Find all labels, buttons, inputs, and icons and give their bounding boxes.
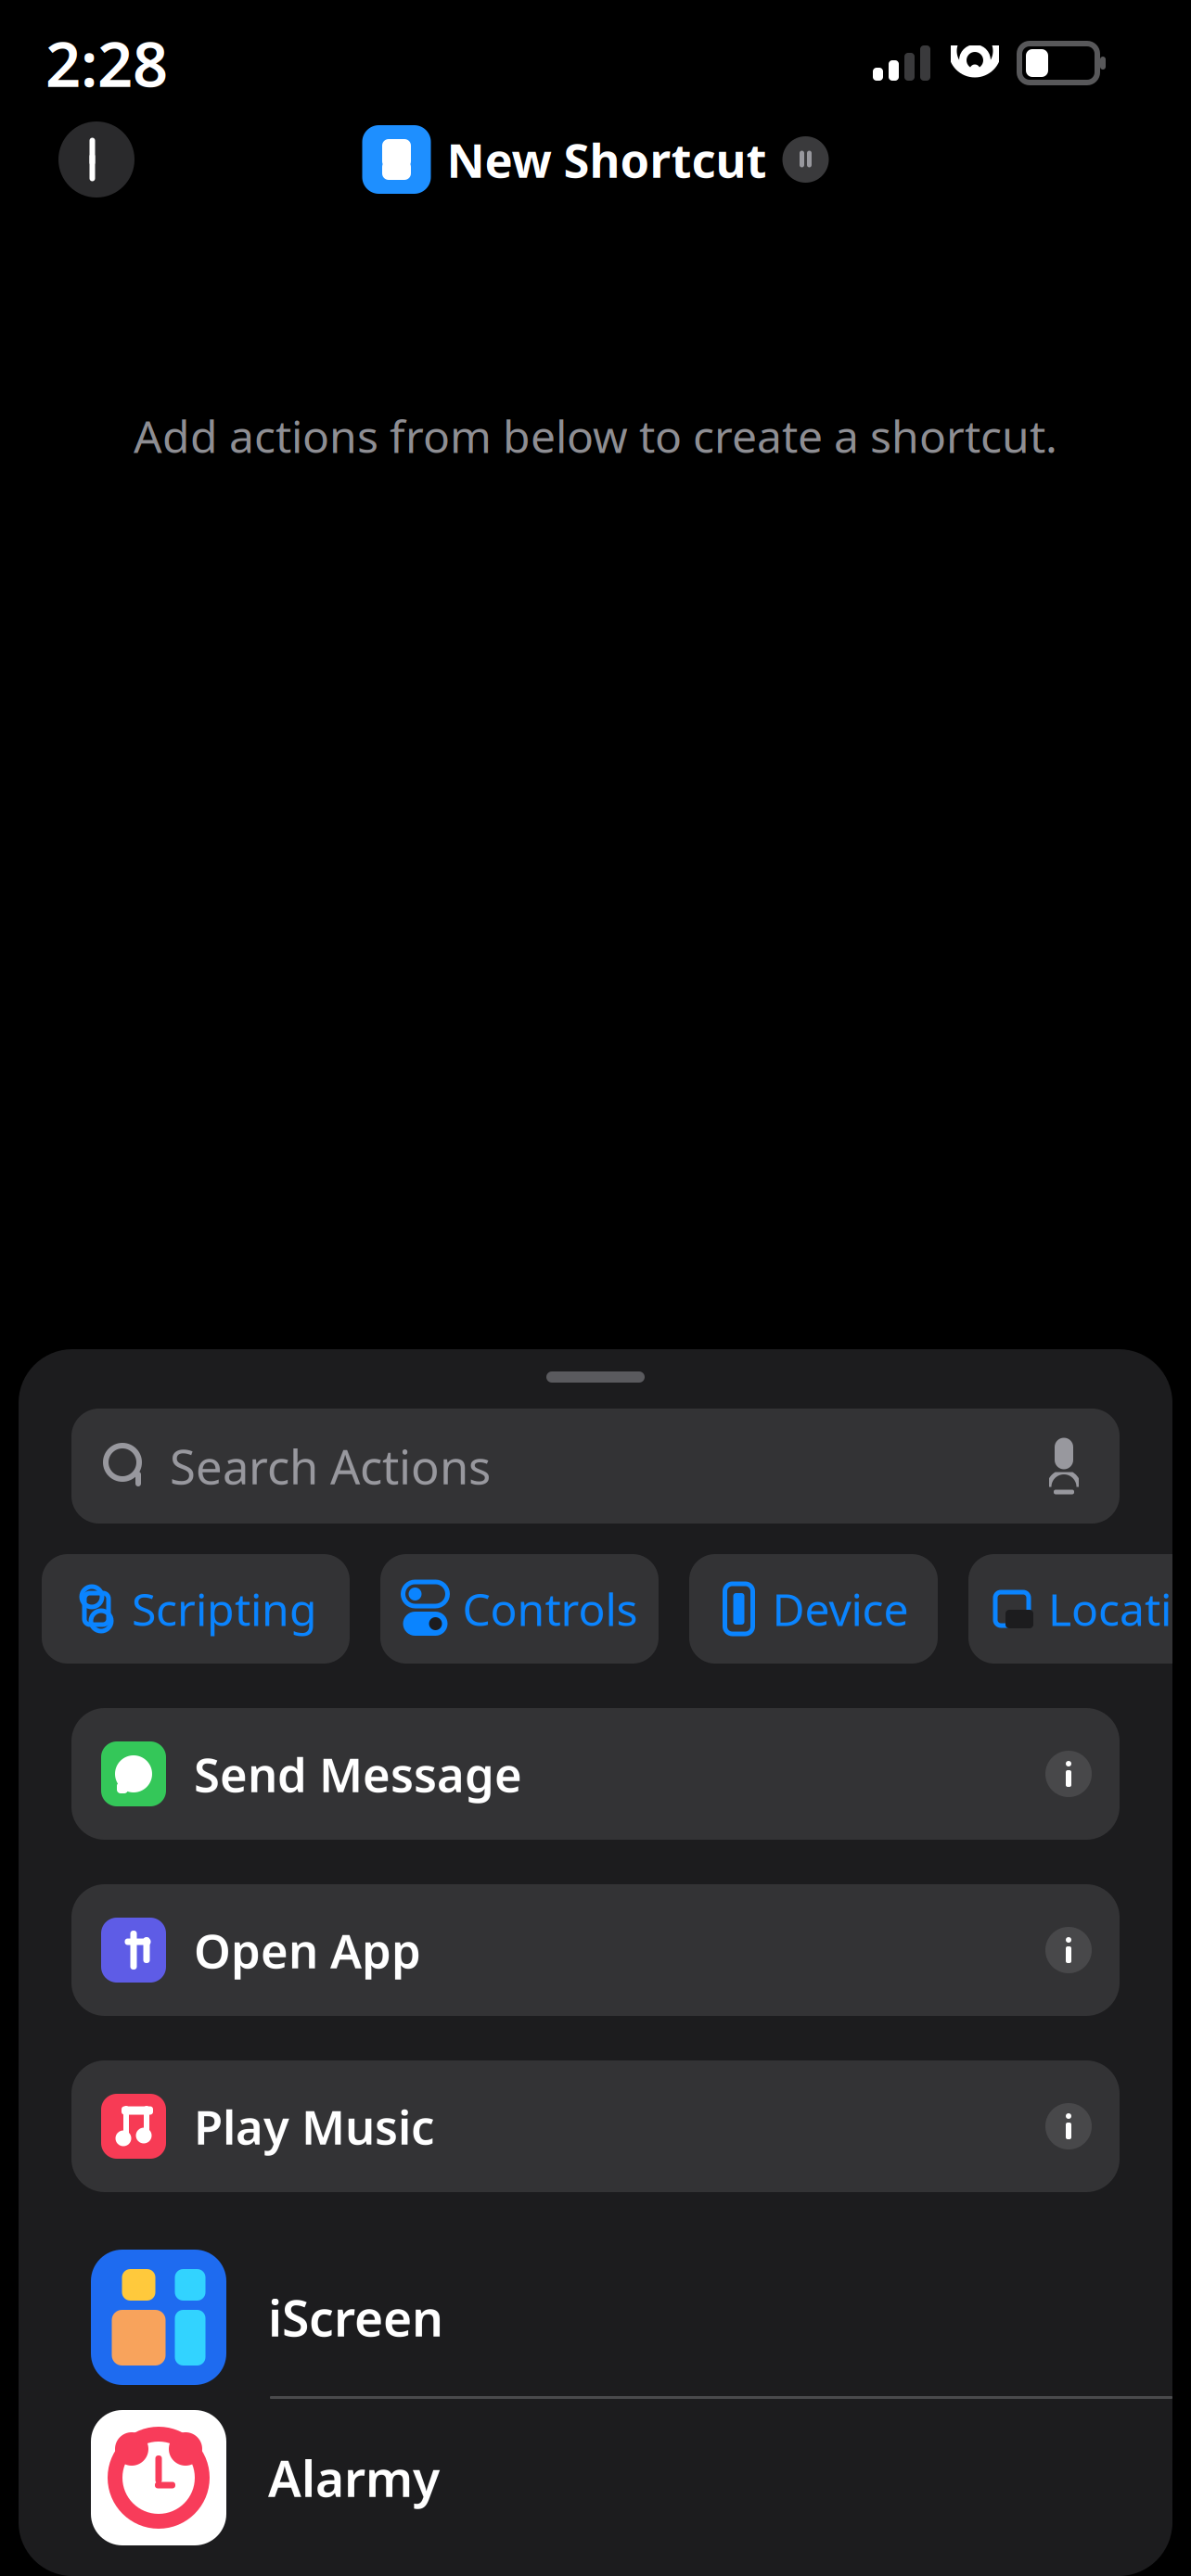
staticText: New Shortcut bbox=[447, 128, 767, 191]
staticText: Open App bbox=[194, 1919, 421, 1981]
button[interactable]: Play Music bbox=[71, 2060, 1120, 2192]
button[interactable]: Device bbox=[689, 1554, 938, 1664]
button[interactable]: iScreen bbox=[19, 2251, 1172, 2383]
button[interactable]: Shortcut options bbox=[782, 136, 829, 183]
button[interactable]: Controls bbox=[380, 1554, 659, 1664]
button[interactable]: Search Actions bbox=[71, 1409, 1120, 1524]
staticText: Controls bbox=[462, 1579, 638, 1638]
button[interactable]: Open App bbox=[71, 1884, 1120, 2016]
button[interactable]: Location bbox=[968, 1554, 1191, 1664]
staticText: Add actions from below to create a short… bbox=[134, 406, 1057, 465]
staticText: iScreen bbox=[268, 2284, 443, 2350]
staticText: Play Music bbox=[194, 2095, 434, 2158]
staticText: Send Message bbox=[194, 1743, 522, 1805]
button[interactable]: Alarmy bbox=[19, 2412, 1172, 2544]
staticText: Device bbox=[772, 1579, 909, 1638]
button[interactable]: Send Message bbox=[71, 1708, 1120, 1840]
staticText: Search Actions bbox=[170, 1435, 491, 1497]
staticText: Alarmy bbox=[268, 2445, 440, 2511]
button[interactable]: Back bbox=[58, 121, 134, 198]
staticText: Location bbox=[1048, 1579, 1191, 1638]
staticText: 2:28 bbox=[45, 22, 168, 104]
button[interactable]: Scripting bbox=[42, 1554, 350, 1664]
staticText: Scripting bbox=[132, 1579, 317, 1638]
